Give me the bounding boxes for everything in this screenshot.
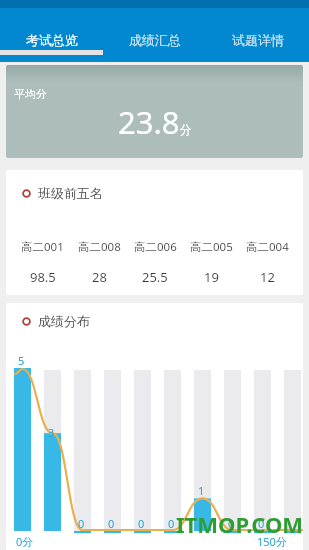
staticText: 高二004 — [246, 239, 289, 255]
staticText: 高二008 — [78, 239, 121, 255]
staticText: 98.5 — [30, 268, 56, 286]
button[interactable]: 成绩汇总 — [103, 8, 206, 62]
staticText: 高二006 — [134, 239, 177, 255]
button[interactable]: 试题详情 — [206, 8, 309, 62]
staticText: 0 — [138, 516, 145, 531]
staticText: 0分 — [16, 534, 34, 549]
staticText: 150分 — [257, 534, 287, 549]
staticText: 0 — [168, 516, 175, 531]
staticText: ITMOP.COM — [176, 509, 303, 539]
staticText: 0 — [258, 516, 265, 531]
staticText: 成绩汇总 — [129, 32, 181, 48]
button[interactable]: 成绩分布 — [6, 303, 303, 550]
staticText: 0 — [78, 516, 85, 531]
staticText: 23.8分 — [118, 101, 192, 143]
staticText: 1 — [198, 483, 205, 498]
staticText: 0 — [108, 516, 115, 531]
staticText: 3 — [48, 425, 55, 440]
staticText: 19 — [204, 268, 219, 286]
staticText: 25.5 — [142, 268, 168, 286]
staticText: 28 — [92, 268, 107, 286]
staticText: 成绩分布 — [38, 313, 90, 329]
staticText: 高二001 — [21, 239, 64, 255]
staticText: 0 — [228, 516, 235, 531]
staticText: 平均分 — [14, 87, 47, 101]
staticText: 12 — [260, 268, 275, 286]
staticText: 考试总览 — [26, 32, 78, 48]
button[interactable]: 班级前五名 — [6, 170, 303, 295]
staticText: 班级前五名 — [38, 185, 103, 201]
button[interactable]: 考试总览 — [0, 8, 103, 62]
staticText: 5 — [18, 353, 25, 368]
staticText: 试题详情 — [232, 32, 284, 48]
staticText: 高二005 — [190, 239, 233, 255]
button[interactable]: 平均分 — [6, 65, 303, 158]
